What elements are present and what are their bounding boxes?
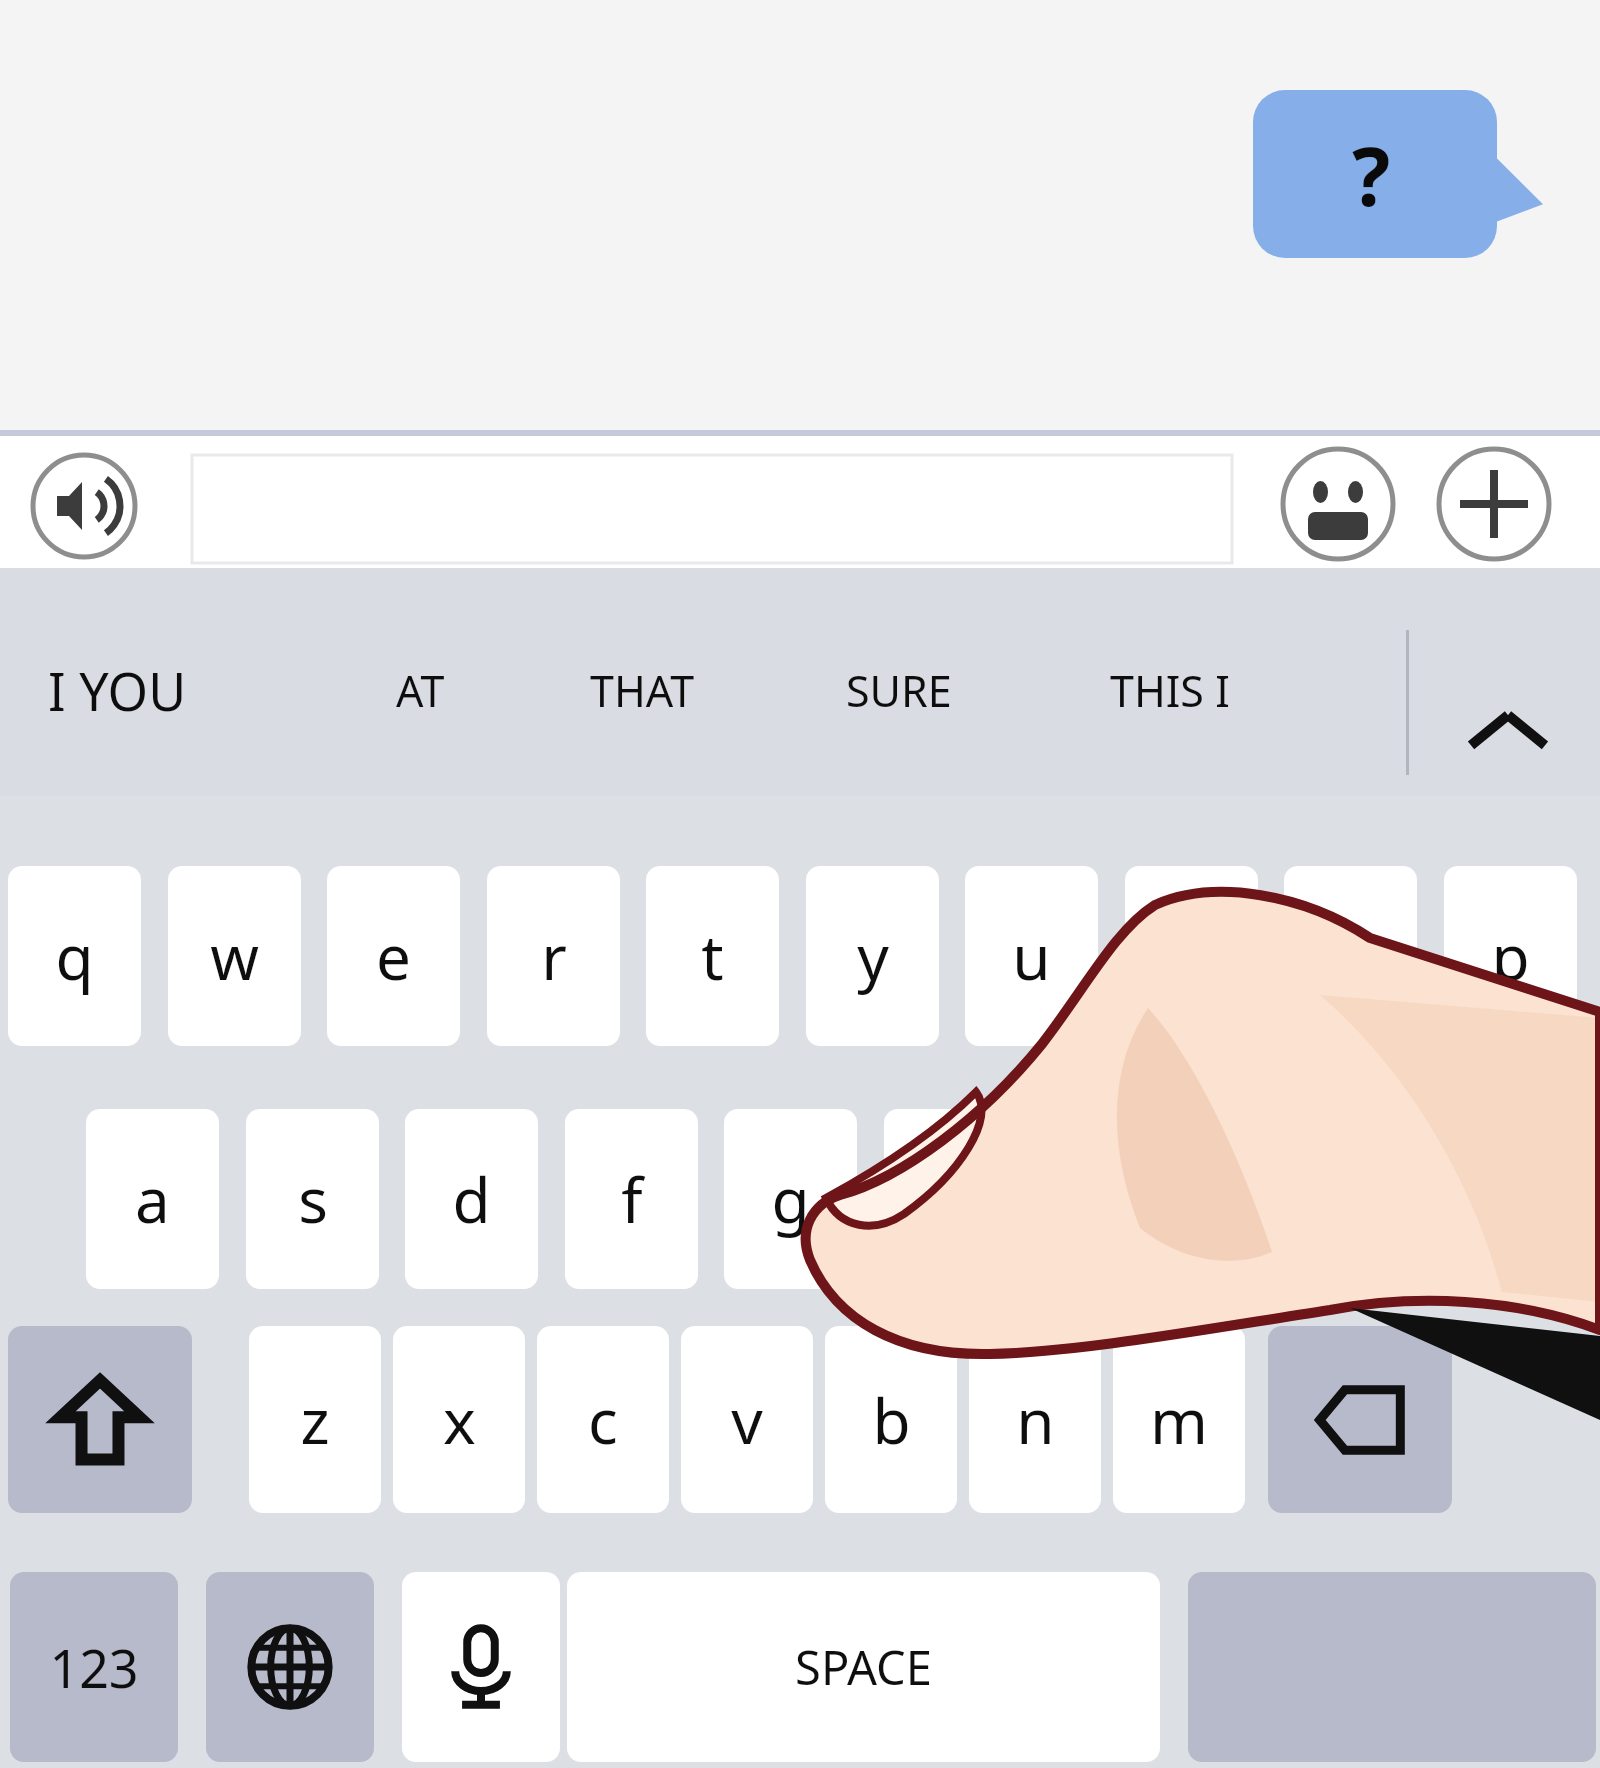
button[interactable] bbox=[192, 455, 1232, 563]
staticText: q bbox=[55, 914, 94, 998]
staticText: k bbox=[1253, 1157, 1287, 1241]
staticText: e bbox=[376, 914, 411, 998]
staticText: r bbox=[541, 914, 567, 998]
button[interactable]: SPACE bbox=[567, 1572, 1160, 1762]
button[interactable]: I YOU bbox=[48, 640, 187, 740]
button[interactable]: z bbox=[249, 1326, 381, 1513]
button[interactable]: o bbox=[1284, 866, 1417, 1046]
button[interactable]: q bbox=[8, 866, 141, 1046]
button[interactable]: AT bbox=[396, 640, 445, 740]
staticText: y bbox=[857, 914, 889, 998]
staticText: ? bbox=[1352, 120, 1391, 229]
button[interactable]: n bbox=[969, 1326, 1101, 1513]
staticText: f bbox=[621, 1157, 643, 1241]
button[interactable]: d bbox=[405, 1109, 538, 1289]
button[interactable]: Emoji bbox=[1280, 446, 1396, 562]
button[interactable]: Add attachment bbox=[1436, 446, 1552, 562]
staticText: d bbox=[452, 1157, 491, 1241]
staticText: 123 bbox=[49, 1632, 139, 1703]
staticText: g bbox=[771, 1157, 810, 1241]
staticText: SPACE bbox=[795, 1635, 932, 1699]
button[interactable]: Voice input bbox=[402, 1572, 560, 1762]
button[interactable]: Expand suggestions bbox=[1448, 672, 1568, 792]
button[interactable]: v bbox=[681, 1326, 813, 1513]
button[interactable]: THAT bbox=[590, 640, 695, 740]
button[interactable]: c bbox=[537, 1326, 669, 1513]
button[interactable]: THIS I bbox=[1110, 640, 1230, 740]
staticText: x bbox=[443, 1378, 476, 1462]
staticText: m bbox=[1150, 1378, 1208, 1462]
button[interactable]: u bbox=[965, 866, 1098, 1046]
button[interactable]: b bbox=[825, 1326, 957, 1513]
button[interactable]: w bbox=[168, 866, 301, 1046]
staticText: p bbox=[1491, 914, 1530, 998]
staticText: b bbox=[872, 1378, 911, 1462]
button[interactable]: k bbox=[1203, 1109, 1336, 1289]
staticText: z bbox=[300, 1378, 330, 1462]
staticText: THIS I bbox=[1110, 661, 1230, 720]
button[interactable]: Shift bbox=[8, 1326, 192, 1513]
staticText: a bbox=[135, 1157, 170, 1241]
button[interactable]: t bbox=[646, 866, 779, 1046]
button[interactable]: 123 bbox=[10, 1572, 178, 1762]
staticText: t bbox=[701, 914, 724, 998]
button[interactable]: a bbox=[86, 1109, 219, 1289]
staticText: w bbox=[210, 914, 259, 998]
button[interactable]: j bbox=[1043, 1109, 1176, 1289]
staticText: u bbox=[1012, 914, 1051, 998]
staticText: v bbox=[731, 1378, 763, 1462]
button[interactable]: l bbox=[1362, 1109, 1495, 1289]
staticText: s bbox=[298, 1157, 328, 1241]
button[interactable]: p bbox=[1444, 866, 1577, 1046]
staticText: SURE bbox=[846, 661, 952, 720]
button[interactable]: h bbox=[884, 1109, 1017, 1289]
staticText: THAT bbox=[590, 661, 695, 720]
button[interactable]: m bbox=[1113, 1326, 1245, 1513]
button[interactable]: g bbox=[724, 1109, 857, 1289]
button[interactable]: SURE bbox=[846, 640, 952, 740]
staticText: I YOU bbox=[48, 655, 187, 726]
button[interactable]: i bbox=[1125, 866, 1258, 1046]
button[interactable]: Speak bbox=[30, 452, 138, 560]
button[interactable]: e bbox=[327, 866, 460, 1046]
staticText: c bbox=[588, 1378, 618, 1462]
button[interactable]: y bbox=[806, 866, 939, 1046]
button[interactable]: ? bbox=[1253, 90, 1497, 258]
staticText: AT bbox=[396, 661, 445, 720]
staticText: n bbox=[1016, 1378, 1055, 1462]
button[interactable]: s bbox=[246, 1109, 379, 1289]
staticText: o bbox=[1332, 914, 1370, 998]
button[interactable]: r bbox=[487, 866, 620, 1046]
button[interactable]: Change language bbox=[206, 1572, 374, 1762]
staticText: h bbox=[931, 1157, 970, 1241]
button[interactable]: x bbox=[393, 1326, 525, 1513]
button[interactable]: Backspace bbox=[1268, 1326, 1452, 1513]
button[interactable]: f bbox=[565, 1109, 698, 1289]
